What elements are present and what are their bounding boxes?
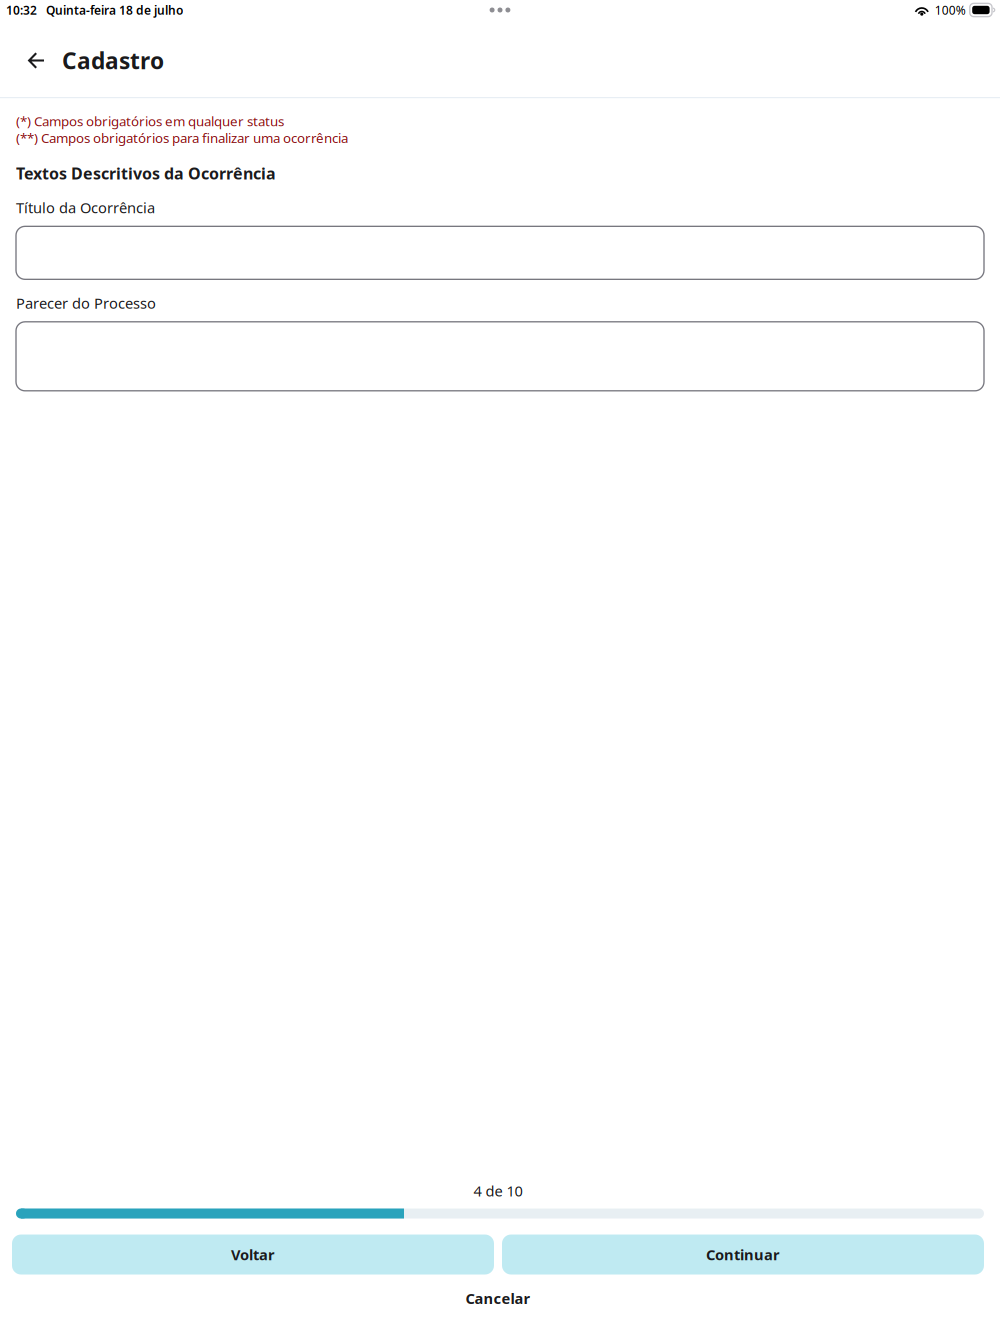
button[interactable]: Continuar: [502, 1234, 984, 1274]
staticText: Cancelar: [465, 1288, 530, 1308]
button[interactable]: Voltar: [12, 1234, 494, 1274]
staticText: Voltar: [231, 1245, 275, 1264]
staticText: Parecer do Processo: [16, 293, 156, 313]
staticText: Textos Descritivos da Ocorrência: [16, 163, 276, 184]
staticText: (*) Campos obrigatórios em qualquer stat…: [16, 112, 284, 130]
staticText: (**) Campos obrigatórios para finalizar …: [16, 129, 348, 147]
staticText: 100%: [935, 2, 966, 18]
staticText: 4 de 10: [473, 1181, 522, 1200]
staticText: Continuar: [706, 1245, 780, 1264]
button[interactable]: Voltar: [14, 39, 59, 81]
staticText: Cadastro: [62, 45, 164, 75]
staticText: Título da Ocorrência: [16, 198, 155, 217]
staticText: Quinta-feira 18 de julho: [46, 2, 183, 18]
button[interactable]: Cancelar: [12, 1274, 984, 1315]
button[interactable]: Parecer do Processo: [16, 313, 984, 391]
button[interactable]: Título da Ocorrência: [16, 217, 984, 279]
staticText: 10:32: [6, 2, 37, 18]
